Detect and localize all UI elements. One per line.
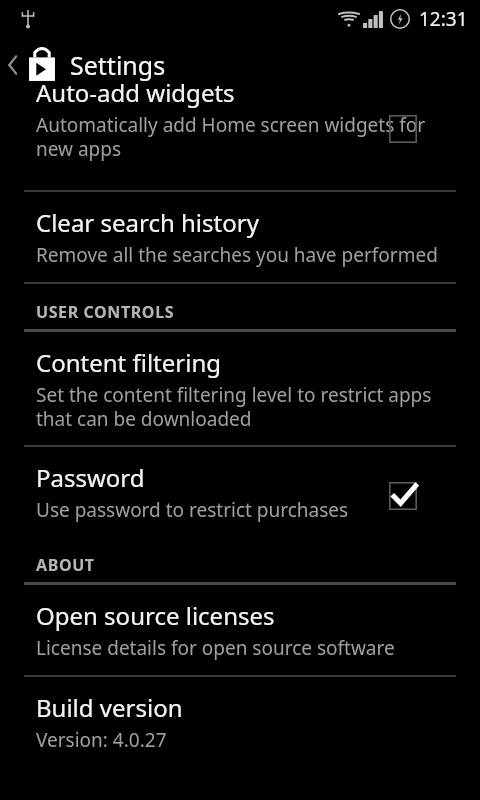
staticText: Password xyxy=(36,461,145,494)
staticText: Remove all the searches you have perform… xyxy=(36,242,438,268)
button[interactable]: Clear search history xyxy=(0,192,480,282)
staticText: License details for open source software xyxy=(36,635,395,661)
button[interactable]: Password xyxy=(0,447,480,537)
staticText: Content filtering xyxy=(36,346,221,379)
staticText: Set the content filtering level to restr… xyxy=(36,382,456,431)
staticText: 12:31 xyxy=(419,6,468,32)
staticText: Auto-add widgets xyxy=(36,76,235,109)
staticText: Automatically add Home screen widgets fo… xyxy=(36,112,460,161)
staticText: USER CONTROLS xyxy=(36,301,175,323)
button[interactable]: Build version xyxy=(0,677,480,767)
staticText: Settings xyxy=(70,48,166,82)
staticText: ABOUT xyxy=(36,554,95,576)
button[interactable]: Open source licenses xyxy=(0,585,480,675)
button[interactable]: Auto-add widgets xyxy=(0,92,480,190)
staticText: Use password to restrict purchases xyxy=(36,497,349,523)
staticText: Build version xyxy=(36,691,183,724)
button[interactable]: Up, Settings xyxy=(0,38,480,92)
staticText: Open source licenses xyxy=(36,599,275,632)
staticText: Version: 4.0.27 xyxy=(36,727,167,753)
button[interactable]: Content filtering xyxy=(0,332,480,445)
staticText: Clear search history xyxy=(36,206,259,239)
